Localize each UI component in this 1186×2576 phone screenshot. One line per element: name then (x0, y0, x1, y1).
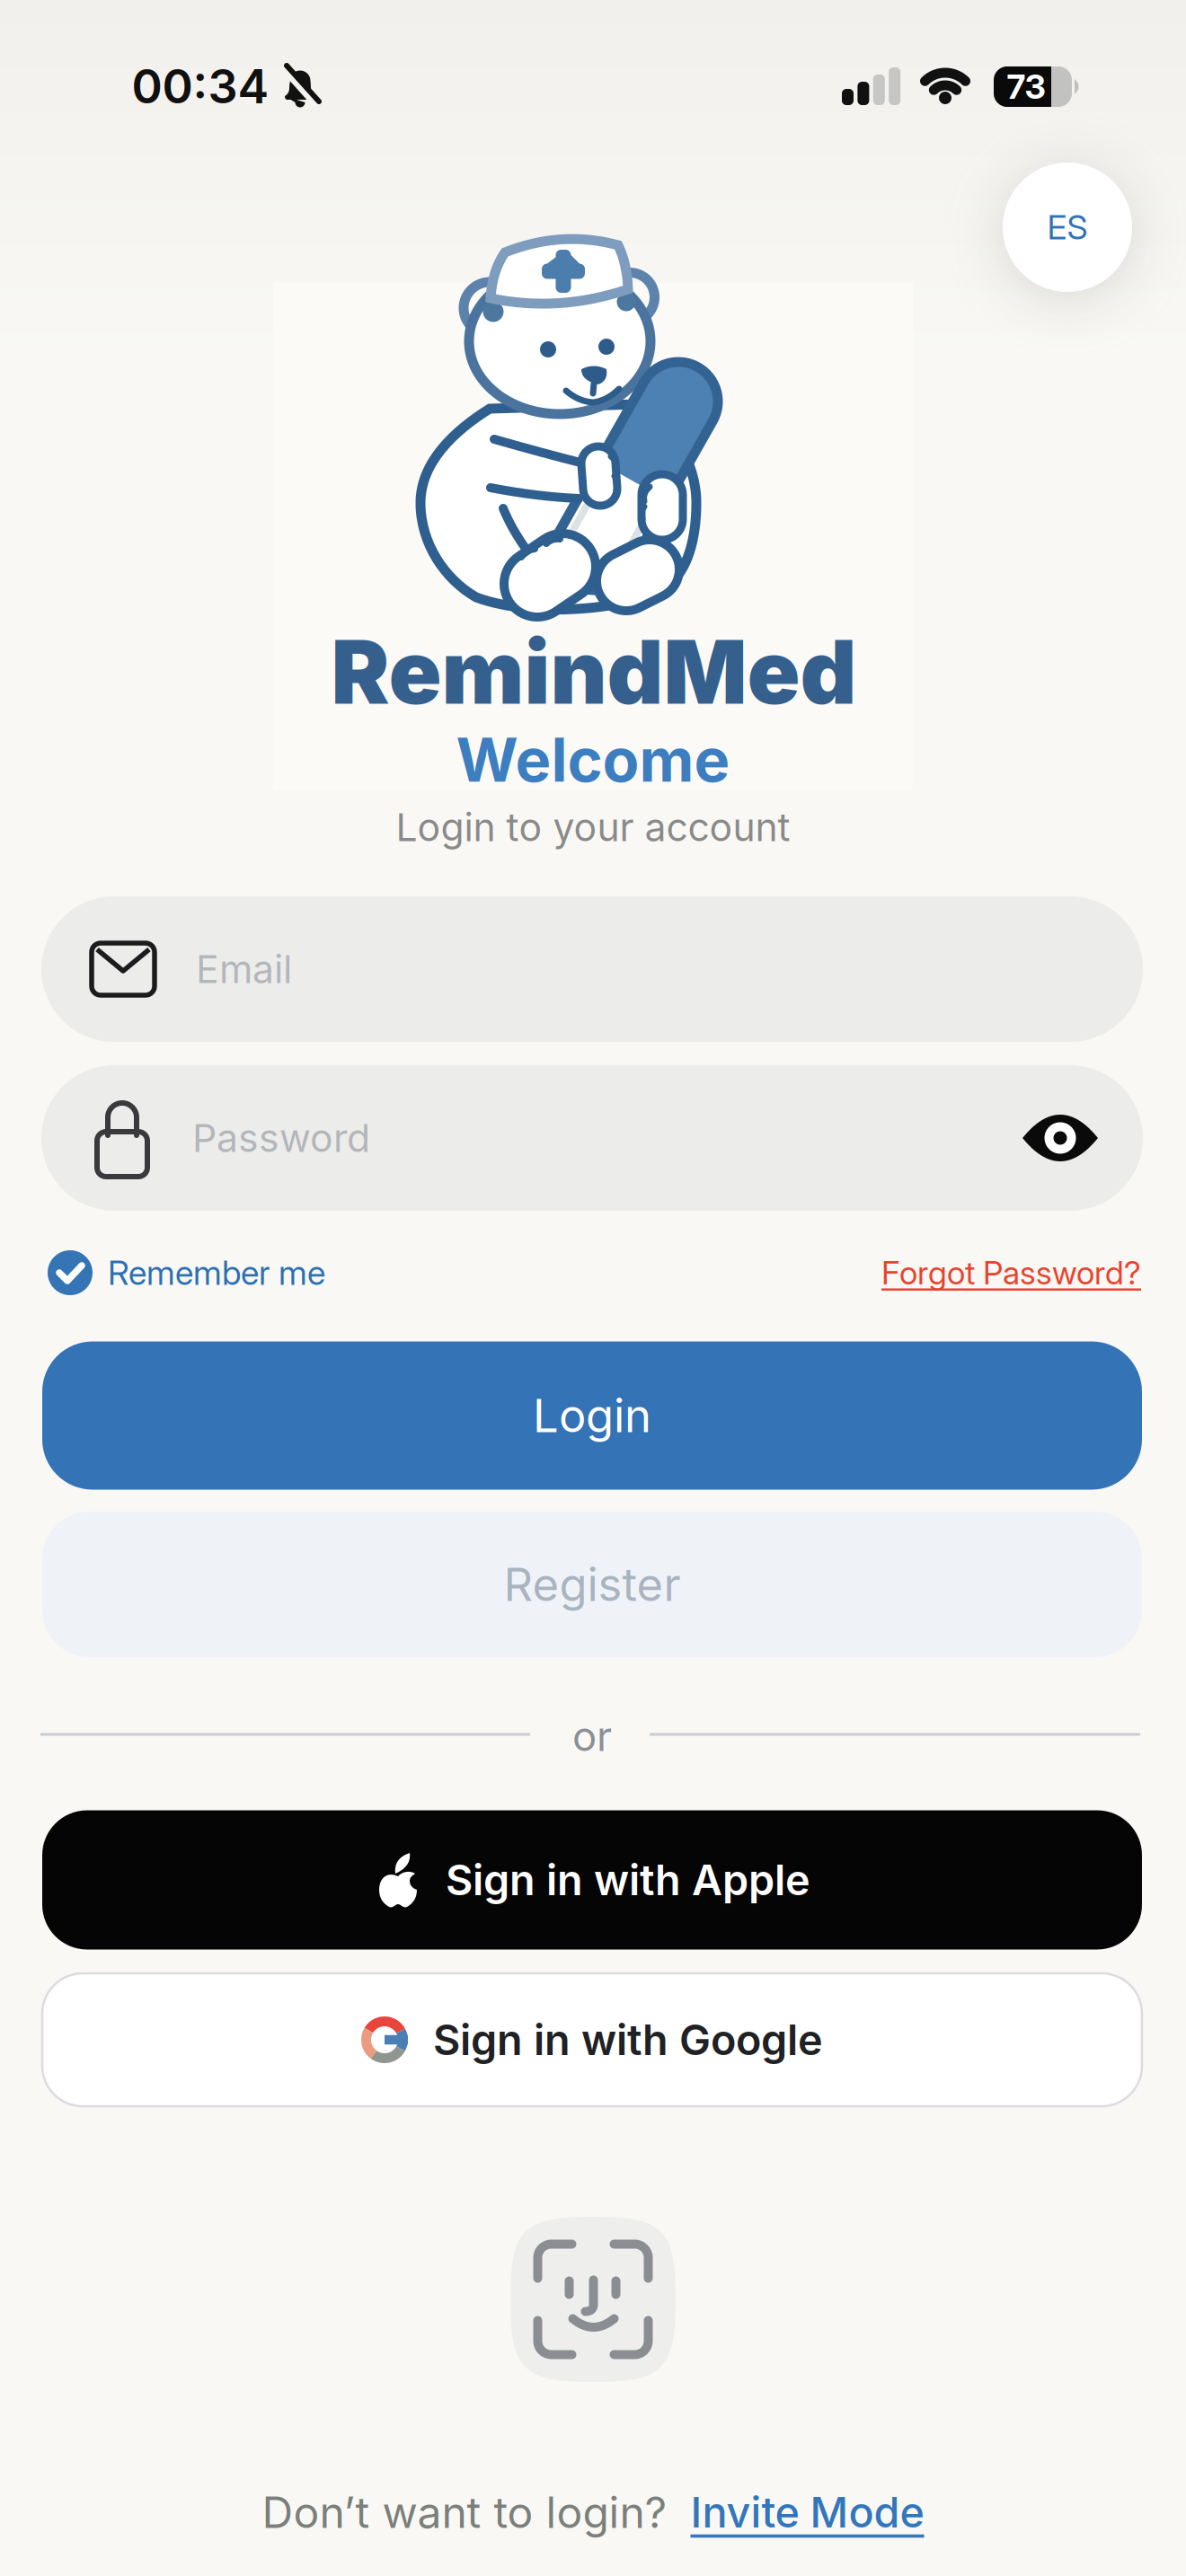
button[interactable]: Invite Mode (690, 2488, 924, 2537)
button[interactable]: Register (42, 1512, 1142, 1657)
staticText: Login (533, 1389, 651, 1442)
button[interactable]: Email (41, 896, 1143, 1042)
staticText: Login to your account (396, 805, 790, 850)
staticText: Email (196, 947, 292, 992)
staticText: Sign in with Google (433, 2015, 823, 2065)
button[interactable]: Login (42, 1341, 1142, 1490)
button[interactable]: Password (41, 1065, 1143, 1211)
staticText: 73 (1007, 67, 1045, 106)
button[interactable]: Sign in with Face ID (510, 2217, 676, 2382)
staticText: Remember me (108, 1253, 325, 1292)
staticText: ES (1047, 207, 1088, 247)
button[interactable]: Sign in with Google (42, 1973, 1142, 2106)
staticText: Register (504, 1558, 681, 1611)
staticText: Don’t want to login? (262, 2487, 667, 2538)
staticText: Sign in with Apple (446, 1855, 810, 1905)
staticText: Password (192, 1115, 370, 1161)
staticText: 00:34 (132, 59, 269, 114)
button[interactable]: Sign in with Apple (42, 1810, 1142, 1950)
button[interactable]: Remember me (48, 1250, 325, 1295)
button[interactable]: Language: ES (1003, 163, 1132, 292)
button[interactable]: Forgot Password? (881, 1254, 1141, 1292)
staticText: Forgot Password? (881, 1254, 1141, 1292)
staticText: or (572, 1712, 612, 1760)
staticText: RemindMed (331, 620, 857, 723)
staticText: Welcome (456, 725, 730, 795)
staticText: Invite Mode (690, 2488, 924, 2537)
